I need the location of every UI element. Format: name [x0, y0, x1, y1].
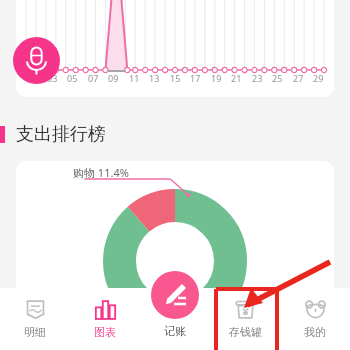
staticText: 29: [313, 72, 324, 84]
button[interactable]: Voice input: [13, 37, 60, 84]
staticText: 05: [67, 72, 78, 84]
staticText: 支出排行榜: [16, 123, 106, 146]
button[interactable]: 明细: [0, 288, 70, 350]
staticText: 03: [47, 72, 58, 84]
button[interactable]: 存钱罐: [210, 288, 280, 350]
staticText: 17: [190, 72, 201, 84]
staticText: 购物 11.4%: [73, 165, 129, 180]
staticText: 07: [88, 72, 99, 84]
staticText: 01: [26, 72, 37, 84]
staticText: 我的: [304, 325, 326, 339]
staticText: 27: [293, 72, 304, 84]
staticText: 21: [231, 72, 242, 84]
staticText: 25: [272, 72, 283, 84]
staticText: 15: [170, 72, 181, 84]
staticText: 11: [129, 72, 140, 84]
staticText: 23: [252, 72, 263, 84]
staticText: 13: [149, 72, 160, 84]
staticText: 存钱罐: [229, 325, 262, 339]
button[interactable]: 图表: [70, 288, 140, 350]
staticText: 记账: [164, 324, 186, 338]
staticText: 09: [108, 72, 119, 84]
staticText: 明细: [24, 325, 46, 339]
button[interactable]: 记账: [151, 271, 199, 319]
staticText: 图表: [94, 325, 116, 339]
staticText: 19: [211, 72, 222, 84]
button[interactable]: 我的: [280, 288, 350, 350]
